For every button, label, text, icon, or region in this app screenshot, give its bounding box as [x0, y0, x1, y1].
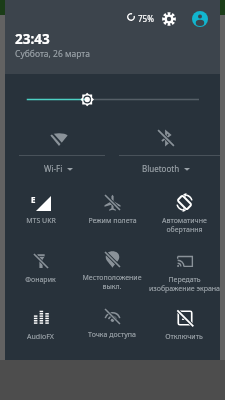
staticText: Суббота, 26 марта: [15, 48, 90, 60]
staticText: Bluetooth: [142, 163, 180, 174]
button[interactable]: Auto rotate: [148, 186, 220, 243]
button[interactable]: Settings: [162, 12, 176, 26]
staticText: Автоматичне обертання: [162, 216, 207, 234]
staticText: 23:43: [15, 30, 50, 48]
button[interactable]: Hotspot: [76, 300, 148, 357]
button[interactable]: Airplane mode: [76, 186, 148, 243]
staticText: E: [31, 194, 36, 205]
staticText: Фонарик: [25, 275, 56, 285]
button[interactable]: Disable: [148, 300, 220, 357]
staticText: AudioFX: [27, 332, 54, 342]
button[interactable]: Brightness: [5, 86, 220, 113]
button[interactable]: Cast screen: [148, 243, 220, 300]
button[interactable]: Location: [76, 243, 148, 300]
button[interactable]: Mobile network: [5, 186, 76, 243]
button[interactable]: AudioFX: [5, 300, 76, 357]
staticText: 75%: [138, 13, 154, 24]
staticText: Отключить: [165, 332, 203, 342]
staticText: Точка доступа: [88, 330, 136, 340]
staticText: Передать изображение экрана: [149, 275, 220, 293]
staticText: MTS UKR: [26, 216, 56, 226]
staticText: Режим полета: [88, 216, 137, 226]
button[interactable]: User account: [192, 11, 208, 27]
button[interactable]: Flashlight: [5, 243, 76, 300]
staticText: Местоположение выкл.: [82, 273, 142, 291]
button[interactable]: Wi-Fi: [5, 122, 112, 180]
staticText: Wi-Fi: [44, 163, 63, 174]
button[interactable]: Bluetooth: [112, 122, 220, 180]
